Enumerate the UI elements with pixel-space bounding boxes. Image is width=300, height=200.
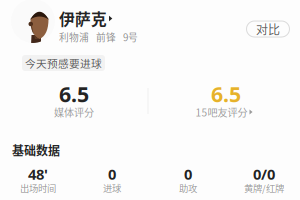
staticText: 前锋: [96, 30, 116, 44]
staticText: 48': [28, 164, 48, 184]
staticText: 伊萨克: [59, 7, 107, 30]
staticText: 0: [184, 164, 192, 184]
button[interactable]: 对比: [246, 21, 289, 37]
staticText: 基础数据: [12, 141, 60, 159]
staticText: 6.5: [59, 80, 89, 108]
staticText: 媒体评分: [54, 105, 94, 119]
staticText: 0/0: [253, 164, 275, 184]
staticText: 15吧友评分: [195, 105, 247, 119]
staticText: 6.5: [211, 80, 241, 108]
staticText: 0: [108, 164, 116, 184]
staticText: 今天预感要进球: [25, 55, 102, 71]
staticText: 进球: [103, 181, 121, 195]
staticText: 对比: [256, 20, 280, 38]
staticText: 出场时间: [20, 181, 56, 195]
staticText: 助攻: [179, 181, 197, 195]
staticText: 黄牌/红牌: [244, 181, 284, 195]
staticText: 利物浦: [59, 30, 89, 44]
staticText: 9号: [123, 30, 138, 44]
